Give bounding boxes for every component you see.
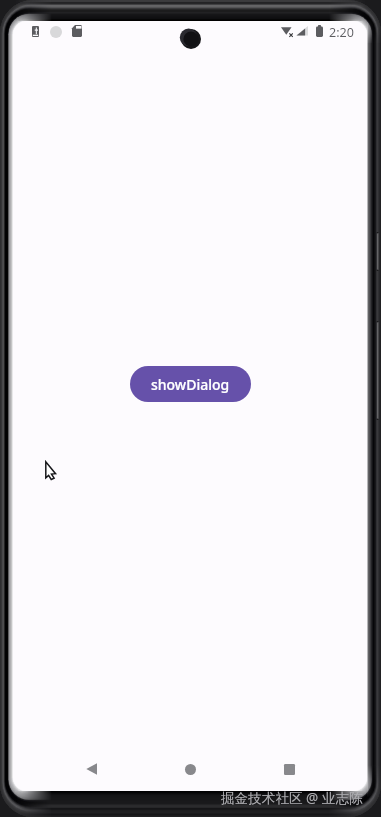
button[interactable]: Home [168, 755, 212, 783]
button[interactable]: Recents [267, 755, 311, 783]
button[interactable]: showDialog [130, 366, 251, 402]
staticText: showDialog [151, 375, 230, 394]
button[interactable]: Back [69, 755, 113, 783]
staticText: 掘金技术社区 @ 业志陈 [221, 788, 363, 807]
staticText: 2:20 [329, 24, 354, 41]
